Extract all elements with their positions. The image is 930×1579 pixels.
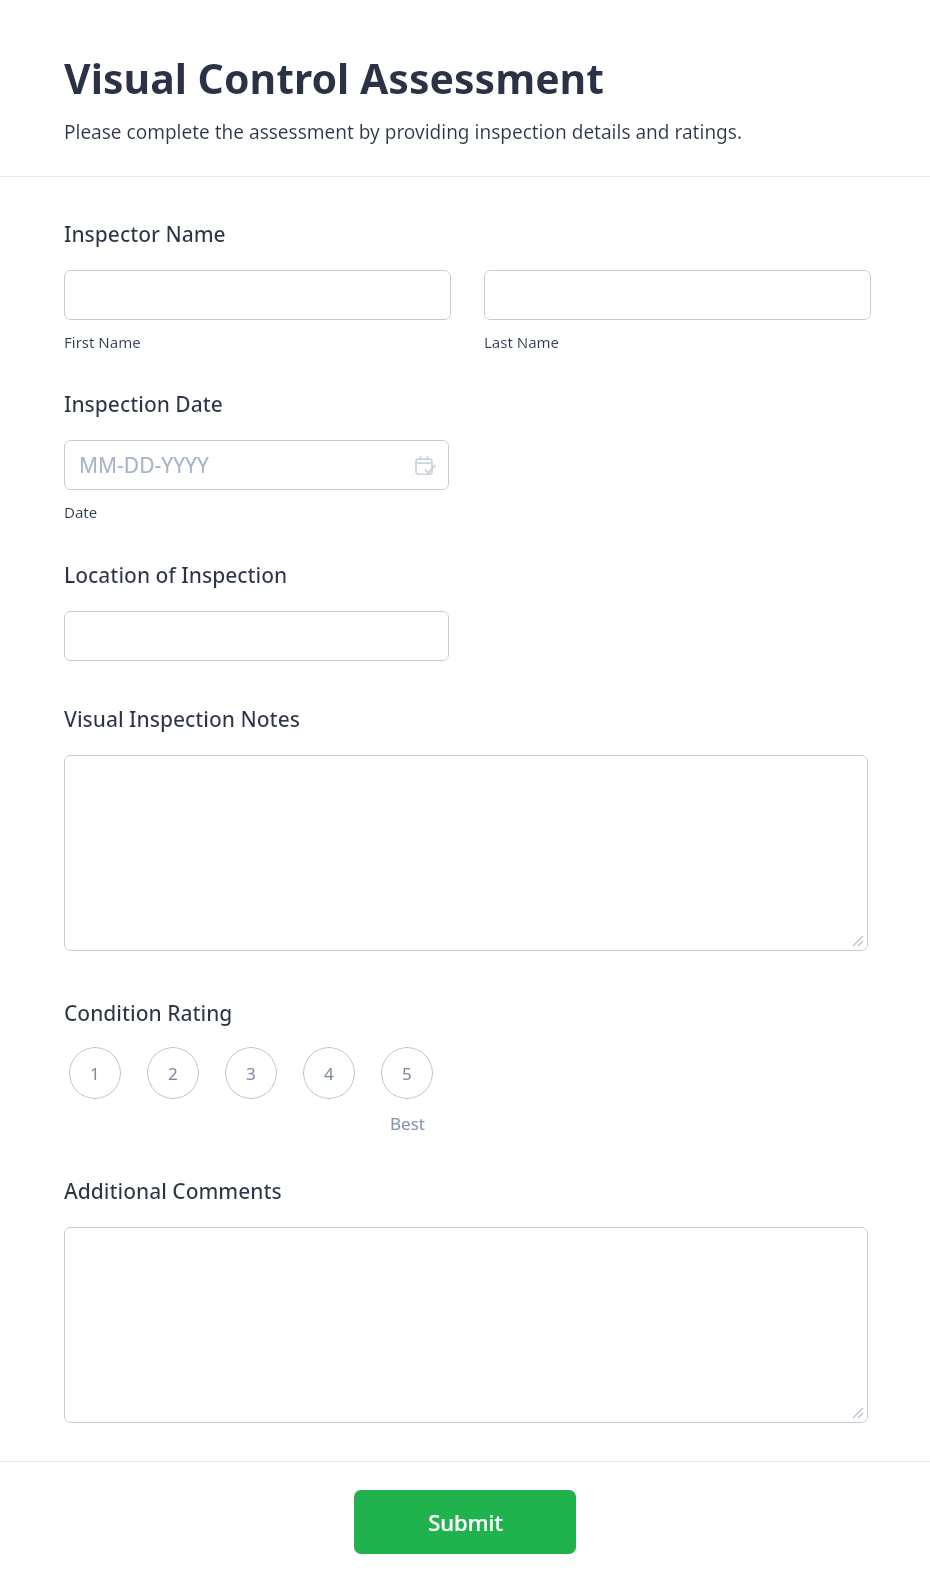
staticText: MM-DD-YYYY	[79, 451, 209, 480]
button[interactable]: First name	[64, 270, 451, 320]
staticText: 1	[90, 1062, 100, 1085]
button[interactable]: 3	[225, 1047, 277, 1099]
staticText: Additional Comments	[64, 1177, 282, 1206]
button[interactable]: Last name	[484, 270, 871, 320]
button[interactable]: 2	[147, 1047, 199, 1099]
staticText: Location of Inspection	[64, 561, 288, 590]
staticText: 4	[324, 1062, 334, 1085]
button[interactable]: Submit	[354, 1490, 576, 1554]
staticText: Submit	[428, 1507, 503, 1537]
button[interactable]: Location of inspection	[64, 611, 449, 661]
staticText: 5	[402, 1062, 412, 1085]
button[interactable]: 1	[69, 1047, 121, 1099]
staticText: Inspector Name	[64, 220, 226, 249]
staticText: Visual Inspection Notes	[64, 705, 300, 734]
button[interactable]: 5	[381, 1047, 433, 1099]
button[interactable]: Visual inspection notes	[64, 755, 868, 951]
staticText: 3	[246, 1062, 256, 1085]
staticText: Date	[64, 502, 98, 522]
staticText: Please complete the assessment by provid…	[64, 119, 742, 145]
staticText: First Name	[64, 332, 141, 352]
staticText: Inspection Date	[64, 390, 223, 419]
staticText: Condition Rating	[64, 999, 233, 1028]
staticText: 2	[168, 1062, 178, 1085]
staticText: Best	[390, 1112, 425, 1135]
staticText: Visual Control Assessment	[64, 50, 605, 106]
button[interactable]: 4	[303, 1047, 355, 1099]
button[interactable]: Inspection date	[64, 440, 449, 490]
staticText: Last Name	[484, 332, 560, 352]
button[interactable]: Additional comments	[64, 1227, 868, 1423]
